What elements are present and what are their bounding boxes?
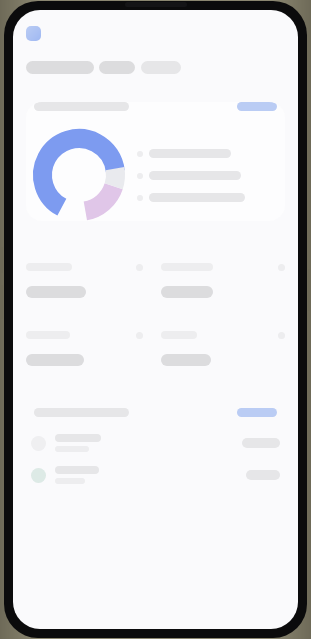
button[interactable]: [26, 408, 285, 417]
other: More info: [136, 264, 143, 271]
button[interactable]: [26, 102, 285, 111]
button[interactable]: More info: [161, 261, 285, 300]
button[interactable]: [31, 427, 280, 459]
button[interactable]: More info: [26, 261, 143, 300]
button[interactable]: More info: [26, 329, 143, 368]
button[interactable]: [137, 189, 285, 206]
other: More info: [278, 332, 285, 339]
button[interactable]: [137, 145, 285, 162]
button[interactable]: [31, 459, 280, 491]
button[interactable]: More info: [161, 329, 285, 368]
button[interactable]: App logo: [26, 26, 41, 41]
other: More info: [136, 332, 143, 339]
button[interactable]: [137, 167, 285, 184]
other: More info: [278, 264, 285, 271]
